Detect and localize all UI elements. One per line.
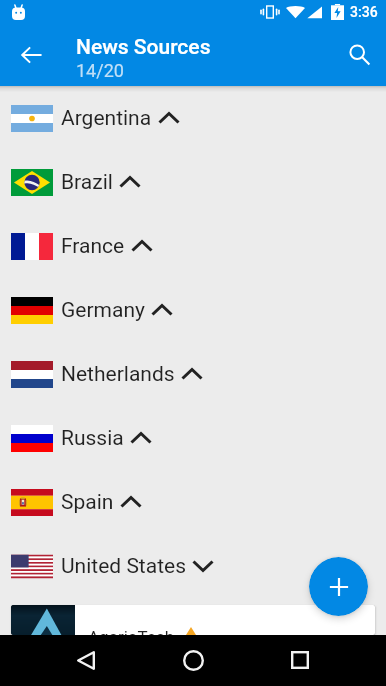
button[interactable]: Netherlands	[0, 342, 386, 406]
button[interactable]: Recents	[276, 636, 324, 684]
staticText: Argentina	[61, 106, 152, 131]
staticText: Russia	[61, 426, 124, 451]
button[interactable]: Home	[169, 636, 217, 684]
button[interactable]: Brazil	[0, 150, 386, 214]
button[interactable]: United States	[0, 534, 386, 598]
button[interactable]: France	[0, 214, 386, 278]
button[interactable]: Back	[7, 31, 55, 79]
staticText: Germany	[61, 298, 145, 323]
button[interactable]: Back	[62, 636, 110, 684]
button[interactable]: Search	[338, 33, 382, 77]
staticText: News Sources	[76, 35, 211, 60]
button[interactable]: Add source	[309, 557, 368, 616]
button[interactable]: AgarioTech	[11, 605, 375, 635]
staticText: 14/20	[76, 60, 124, 81]
button[interactable]: Russia	[0, 406, 386, 470]
staticText: Spain	[61, 490, 114, 515]
button[interactable]: Argentina	[0, 86, 386, 150]
button[interactable]: Spain	[0, 470, 386, 534]
staticText: AgarioTech	[88, 627, 175, 635]
button[interactable]: Germany	[0, 278, 386, 342]
staticText: 3:36	[350, 4, 378, 20]
staticText: United States	[61, 554, 186, 579]
staticText: France	[61, 234, 125, 259]
staticText: Netherlands	[61, 362, 175, 387]
staticText: Brazil	[61, 170, 113, 195]
